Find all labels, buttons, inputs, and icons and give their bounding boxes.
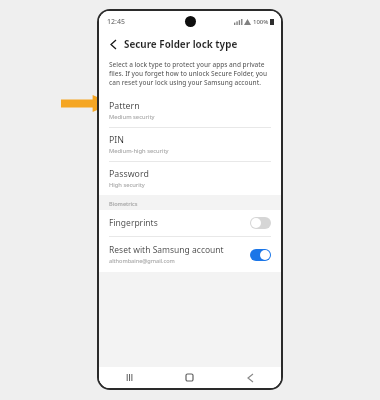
staticText: PIN	[109, 134, 124, 146]
staticText: Select a lock type to protect your apps …	[109, 60, 272, 87]
button[interactable]: Home	[159, 367, 220, 388]
staticText: Medium security	[109, 113, 155, 121]
button[interactable]: Fingerprints	[99, 210, 281, 236]
staticText: 12:45	[107, 17, 125, 27]
staticText: Password	[109, 168, 149, 180]
button[interactable]: PIN	[99, 128, 281, 161]
staticText: Reset with Samsung account	[109, 244, 224, 256]
staticText: High security	[109, 181, 145, 189]
staticText: Secure Folder lock type	[124, 38, 238, 51]
staticText: Biometrics	[109, 200, 138, 208]
button[interactable]: Password	[99, 162, 281, 195]
button[interactable]: Recents	[99, 367, 159, 388]
button[interactable]: Back	[220, 367, 281, 388]
staticText: 100%	[253, 18, 269, 26]
button[interactable]: On	[250, 249, 271, 261]
button[interactable]: Off	[250, 217, 271, 229]
staticText: Fingerprints	[109, 217, 158, 229]
staticText: althombaine@gmail.com	[109, 257, 175, 265]
staticText: Medium-high security	[109, 147, 169, 155]
button[interactable]: Navigate up	[106, 37, 121, 52]
button[interactable]: Reset with Samsung account	[99, 237, 281, 272]
staticText: Pattern	[109, 100, 140, 112]
button[interactable]: Pattern	[99, 94, 281, 127]
